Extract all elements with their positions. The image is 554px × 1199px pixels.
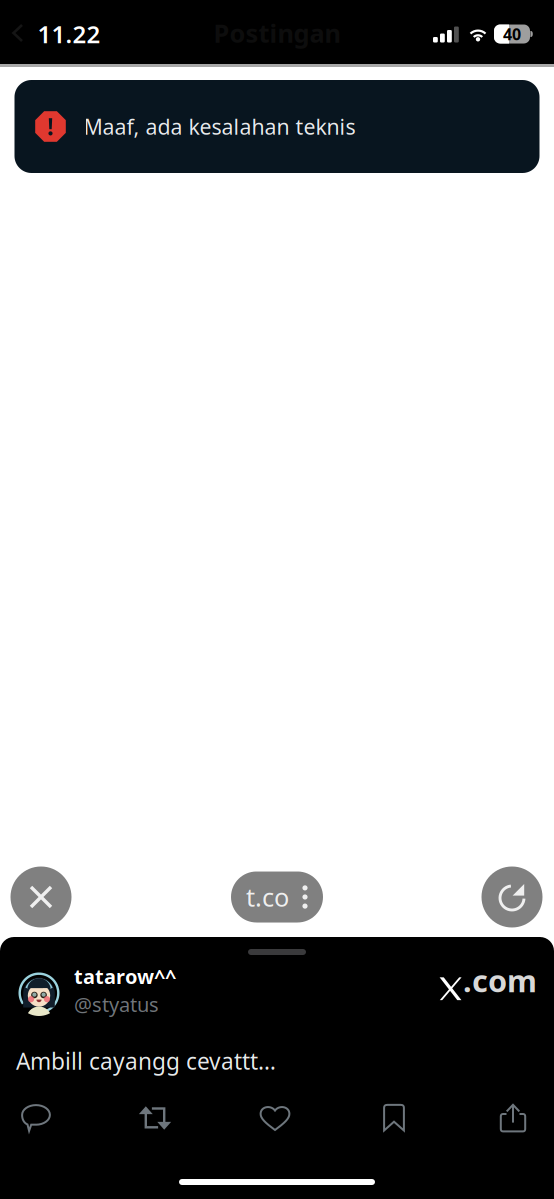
- staticText: Postingan: [213, 16, 340, 50]
- staticText: Maaf, ada kesalahan teknis: [83, 112, 355, 141]
- staticText: .com: [463, 960, 537, 1001]
- button[interactable]: Repost: [124, 1094, 186, 1142]
- staticText: 40: [503, 23, 521, 45]
- staticText: tatarow^^: [74, 963, 176, 990]
- staticText: Ambill cayangg cevattt…: [16, 1046, 276, 1076]
- button[interactable]: Reload: [481, 866, 542, 927]
- staticText: t.co: [246, 880, 289, 914]
- button[interactable]: Like: [244, 1094, 306, 1142]
- staticText: @styatus: [74, 991, 159, 1018]
- staticText: 11.22: [37, 18, 100, 50]
- button[interactable]: t.co site menu: [231, 871, 323, 922]
- button[interactable]: Close: [10, 866, 71, 927]
- button[interactable]: Bookmark: [363, 1094, 425, 1142]
- button[interactable]: Share: [482, 1094, 544, 1142]
- button[interactable]: Reply: [5, 1094, 67, 1142]
